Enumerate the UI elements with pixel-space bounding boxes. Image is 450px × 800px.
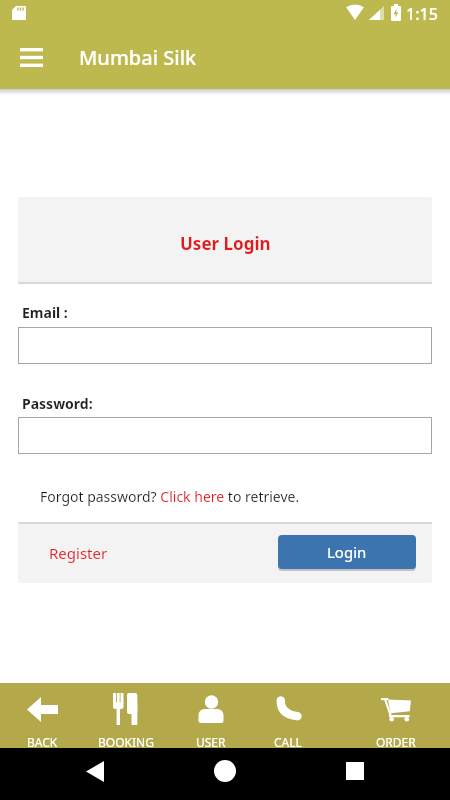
staticText: BACK: [27, 734, 58, 750]
button[interactable]: [207, 753, 243, 789]
button[interactable]: Login: [278, 535, 416, 569]
button[interactable]: [13, 39, 49, 75]
button[interactable]: Register: [49, 543, 108, 563]
staticText: Login: [327, 542, 367, 562]
button[interactable]: [337, 753, 373, 789]
button[interactable]: [18, 327, 432, 364]
staticText: Mumbai Silk: [79, 44, 197, 71]
button[interactable]: CALL: [243, 683, 333, 748]
button[interactable]: [18, 417, 432, 454]
button[interactable]: ORDER: [351, 683, 441, 748]
button[interactable]: BOOKING: [81, 683, 171, 748]
staticText: 1:15: [406, 3, 438, 25]
staticText: BOOKING: [98, 734, 154, 750]
button[interactable]: [77, 753, 113, 789]
button[interactable]: USER: [166, 683, 256, 748]
staticText: Email :: [22, 303, 68, 322]
staticText: ORDER: [376, 734, 416, 750]
staticText: User Login: [180, 232, 271, 255]
staticText: Password:: [22, 394, 93, 413]
button[interactable]: Forgot password? Click here to retrieve.: [40, 487, 300, 506]
staticText: USER: [196, 734, 226, 750]
button[interactable]: BACK: [0, 683, 87, 748]
staticText: CALL: [274, 734, 302, 750]
